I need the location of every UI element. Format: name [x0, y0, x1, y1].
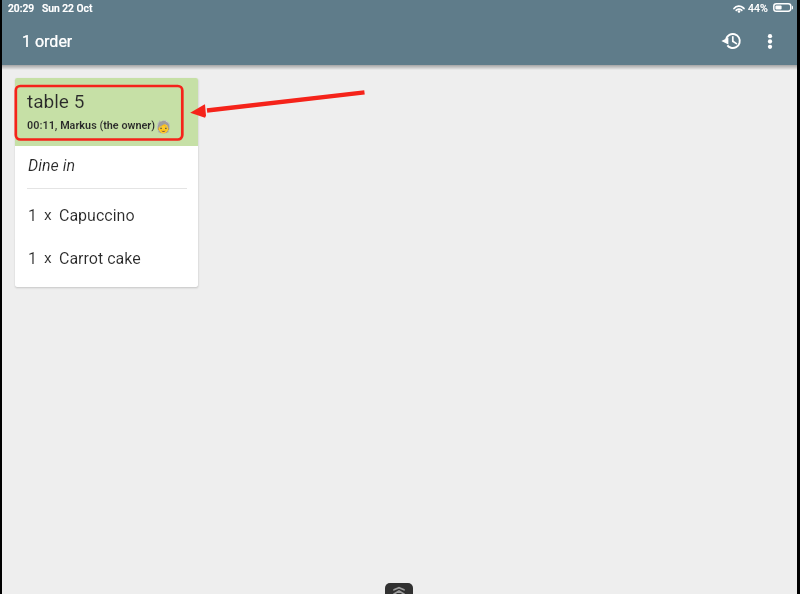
staticText: Capuccino — [59, 206, 135, 225]
staticText: 00:11, Markus (the owner) — [27, 119, 156, 132]
staticText: table 5 — [27, 90, 85, 112]
staticText: Sun 22 Oct — [42, 2, 93, 14]
staticText: 🧓 — [156, 120, 171, 134]
staticText: 1 order — [22, 32, 73, 51]
button[interactable]: More options — [752, 19, 788, 64]
staticText: Carrot cake — [59, 249, 141, 268]
staticText: 44% — [748, 2, 768, 14]
staticText: 20:29 — [8, 2, 35, 14]
button[interactable]: Order history — [710, 18, 752, 63]
button[interactable]: table 5 — [15, 78, 198, 287]
staticText: x — [44, 249, 52, 267]
staticText: 1 — [28, 206, 37, 225]
button[interactable]: Show navigation bar — [385, 583, 413, 594]
staticText: Dine in — [28, 156, 76, 175]
staticText: x — [44, 206, 52, 224]
staticText: 1 — [28, 249, 37, 268]
